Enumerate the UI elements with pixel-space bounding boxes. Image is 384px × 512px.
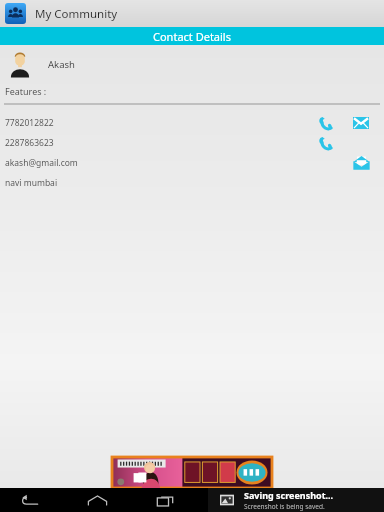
button[interactable]: Call (314, 133, 336, 153)
button[interactable]: Akash (0, 48, 384, 80)
button[interactable]: Back (10, 488, 48, 512)
button[interactable]: Teen Patti advertisement (112, 457, 272, 488)
staticText: My Community (35, 6, 118, 22)
button[interactable]: My Community app icon (5, 3, 26, 24)
staticText: Screenshot is being saved. (244, 502, 325, 511)
button[interactable]: 7782012822 (0, 113, 384, 133)
button[interactable]: Call (314, 113, 336, 133)
button[interactable]: Saving screenshot... (208, 488, 384, 512)
staticText: Contact Details (153, 29, 231, 44)
button[interactable]: navi mumbai (0, 173, 384, 193)
button[interactable]: Home (78, 488, 116, 512)
button[interactable]: 2287863623 (0, 133, 384, 153)
staticText: akash@gmail.com (5, 157, 78, 169)
staticText: 7782012822 (5, 117, 54, 129)
staticText: Saving screenshot... (244, 489, 334, 501)
staticText: Features : (5, 85, 47, 97)
button[interactable]: Send email (350, 113, 372, 133)
button[interactable]: akash@gmail.com (0, 153, 384, 173)
button[interactable]: Open email (350, 153, 372, 173)
button[interactable]: Recent apps (146, 488, 184, 512)
staticText: Akash (48, 58, 75, 71)
staticText: 2287863623 (5, 137, 54, 149)
staticText: navi mumbai (5, 177, 58, 189)
